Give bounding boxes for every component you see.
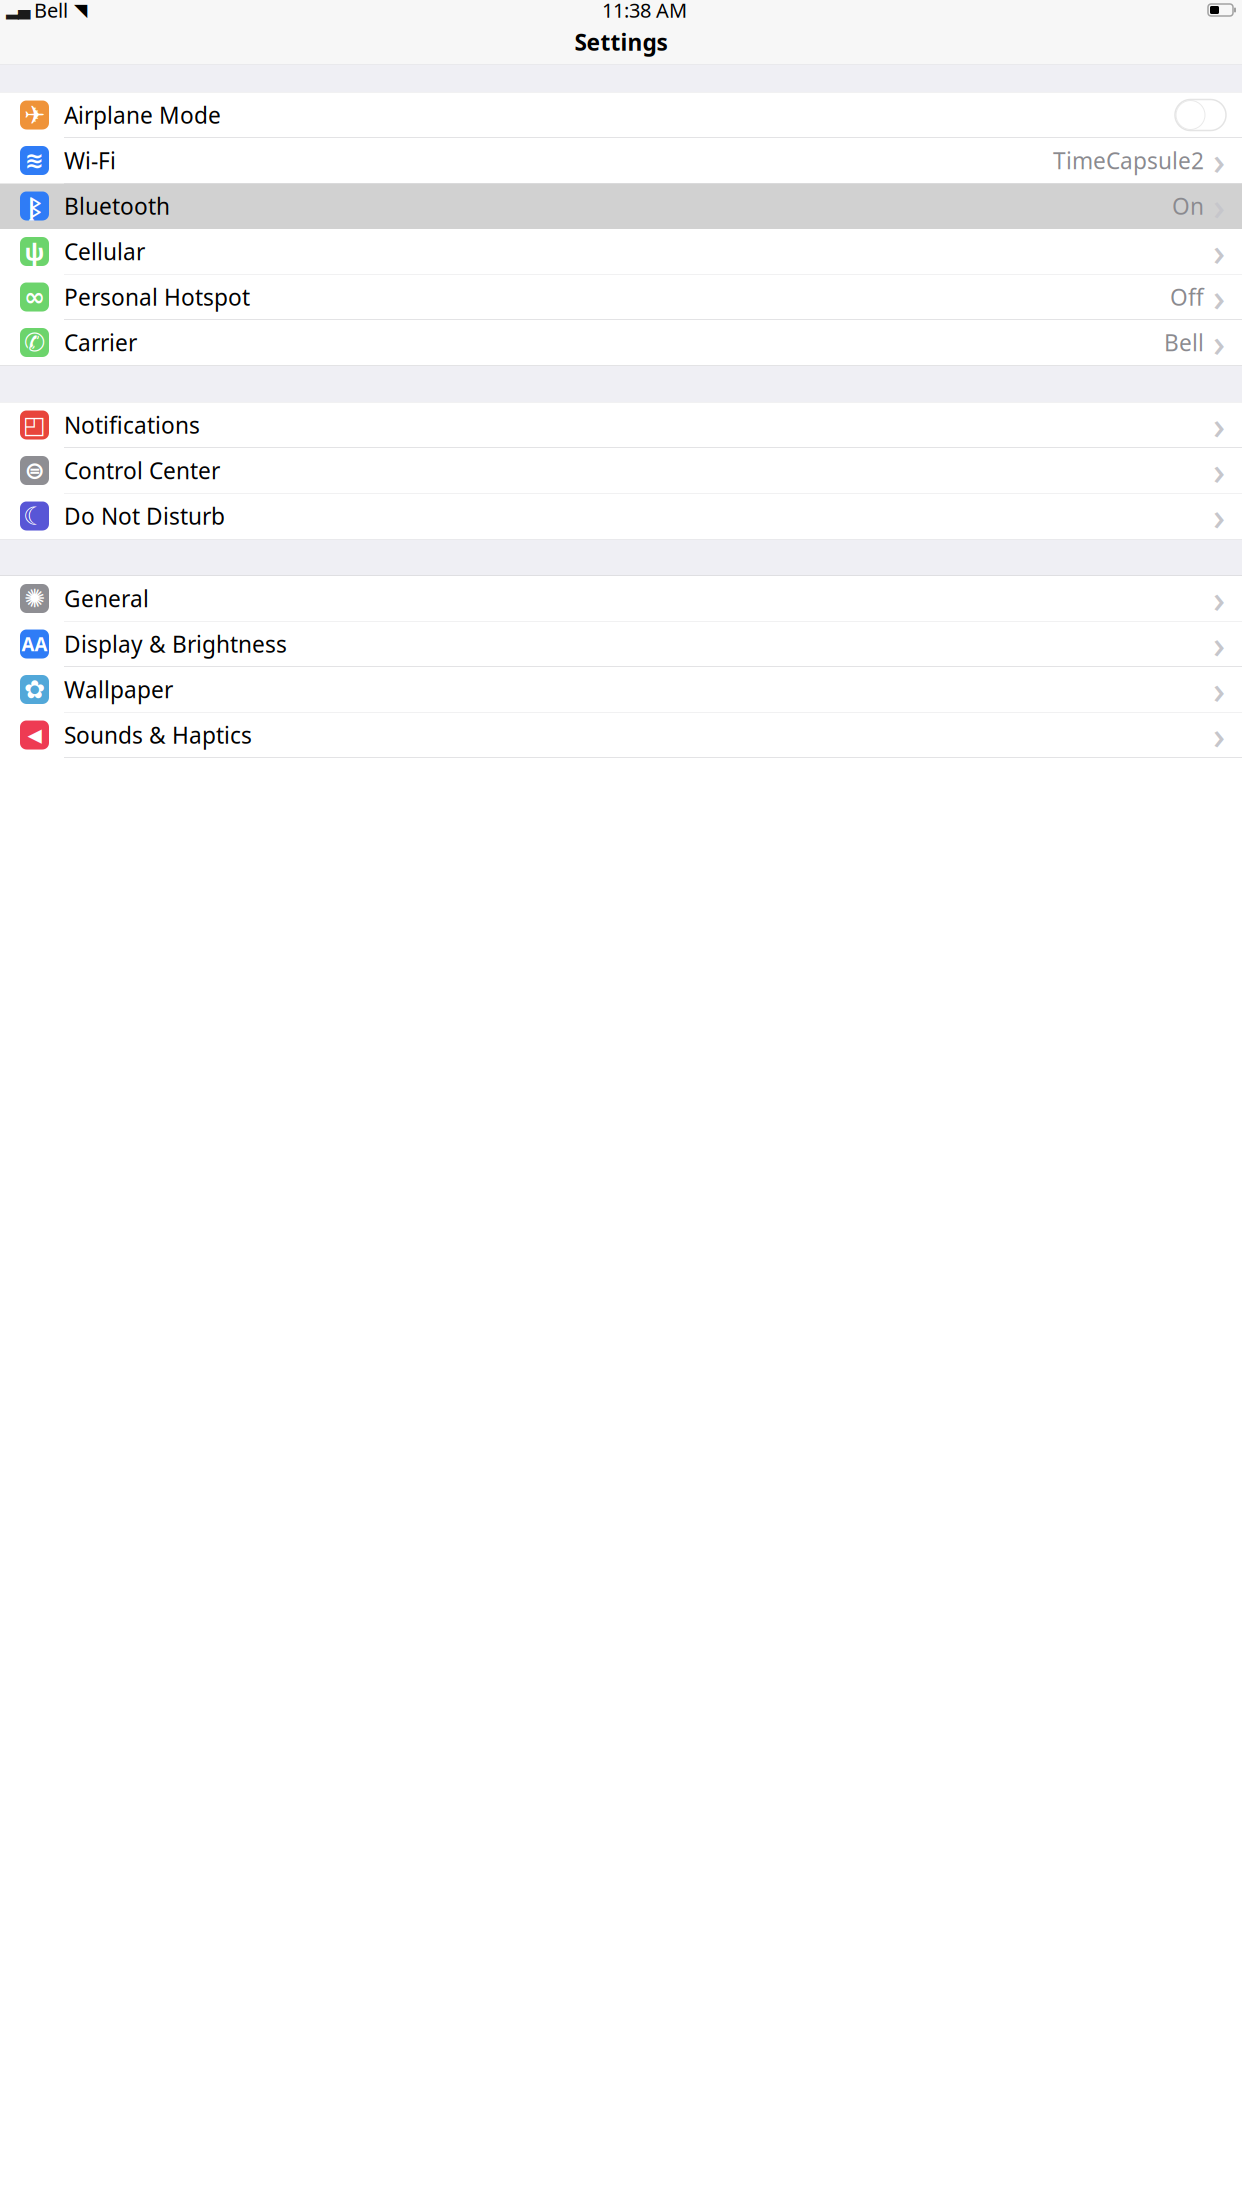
staticText: Carrier <box>64 327 137 357</box>
staticText: ◥ <box>74 0 87 20</box>
button[interactable]: ◀ <box>0 712 1242 758</box>
staticText: 11:38 AM <box>602 0 687 23</box>
button[interactable]: ⊜ <box>0 448 1242 493</box>
staticText: Off <box>1170 282 1204 312</box>
staticText: Bell <box>1164 327 1204 357</box>
staticText: › <box>1213 136 1225 185</box>
staticText: Do Not Disturb <box>64 501 225 531</box>
button[interactable]: ☾ <box>0 493 1242 539</box>
staticText: ≋ <box>25 148 44 173</box>
staticText: › <box>1213 710 1225 760</box>
staticText: ☾ <box>23 502 46 530</box>
button[interactable]: ψ <box>0 229 1242 274</box>
staticText: ▂▄ <box>6 1 30 19</box>
staticText: ✈ <box>24 101 45 129</box>
staticText: › <box>1213 446 1225 495</box>
staticText: ⊜ <box>24 457 44 484</box>
staticText: Sounds & Haptics <box>64 720 252 750</box>
staticText: › <box>1213 227 1225 276</box>
staticText: Display & Brightness <box>64 629 287 659</box>
staticText: ᛒ <box>28 190 41 222</box>
staticText: Notifications <box>64 410 200 440</box>
staticText: AA <box>21 632 47 656</box>
staticText: › <box>1213 619 1225 669</box>
staticText: Control Center <box>64 455 220 485</box>
staticText: Bell <box>34 0 68 23</box>
staticText: › <box>1213 318 1225 367</box>
staticText: › <box>1213 181 1225 231</box>
button[interactable]: ✺ <box>0 576 1242 621</box>
staticText: Wi-Fi <box>64 145 116 175</box>
staticText: ✆ <box>24 328 45 357</box>
button[interactable]: AA <box>0 621 1242 667</box>
staticText: Settings <box>574 27 667 57</box>
staticText: Personal Hotspot <box>64 282 250 312</box>
button[interactable]: ∞ <box>0 274 1242 320</box>
staticText: › <box>1213 400 1225 450</box>
staticText: › <box>1213 491 1225 541</box>
staticText: ∞ <box>24 283 45 311</box>
staticText: Airplane Mode <box>64 100 221 130</box>
staticText: TimeCapsule2 <box>1053 145 1204 175</box>
staticText: ◀ <box>27 724 41 746</box>
staticText: ψ <box>24 236 44 267</box>
button[interactable]: ◰ <box>0 402 1242 448</box>
staticText: › <box>1213 272 1225 322</box>
button[interactable]: ✆ <box>0 320 1242 365</box>
button[interactable]: ᛒ <box>0 183 1242 229</box>
staticText: › <box>1213 574 1225 623</box>
button[interactable]: ✈ <box>0 92 1242 138</box>
staticText: Cellular <box>64 236 145 266</box>
staticText: General <box>64 583 149 613</box>
staticText: On <box>1172 191 1204 221</box>
staticText: Bluetooth <box>64 191 170 221</box>
staticText: ✺ <box>24 584 45 613</box>
staticText: ◰ <box>23 411 46 439</box>
button[interactable]: ✿ <box>0 667 1242 712</box>
staticText: › <box>1213 665 1225 714</box>
staticText: Wallpaper <box>64 674 173 704</box>
button[interactable]: ≋ <box>0 138 1242 183</box>
staticText: ✿ <box>24 675 45 704</box>
